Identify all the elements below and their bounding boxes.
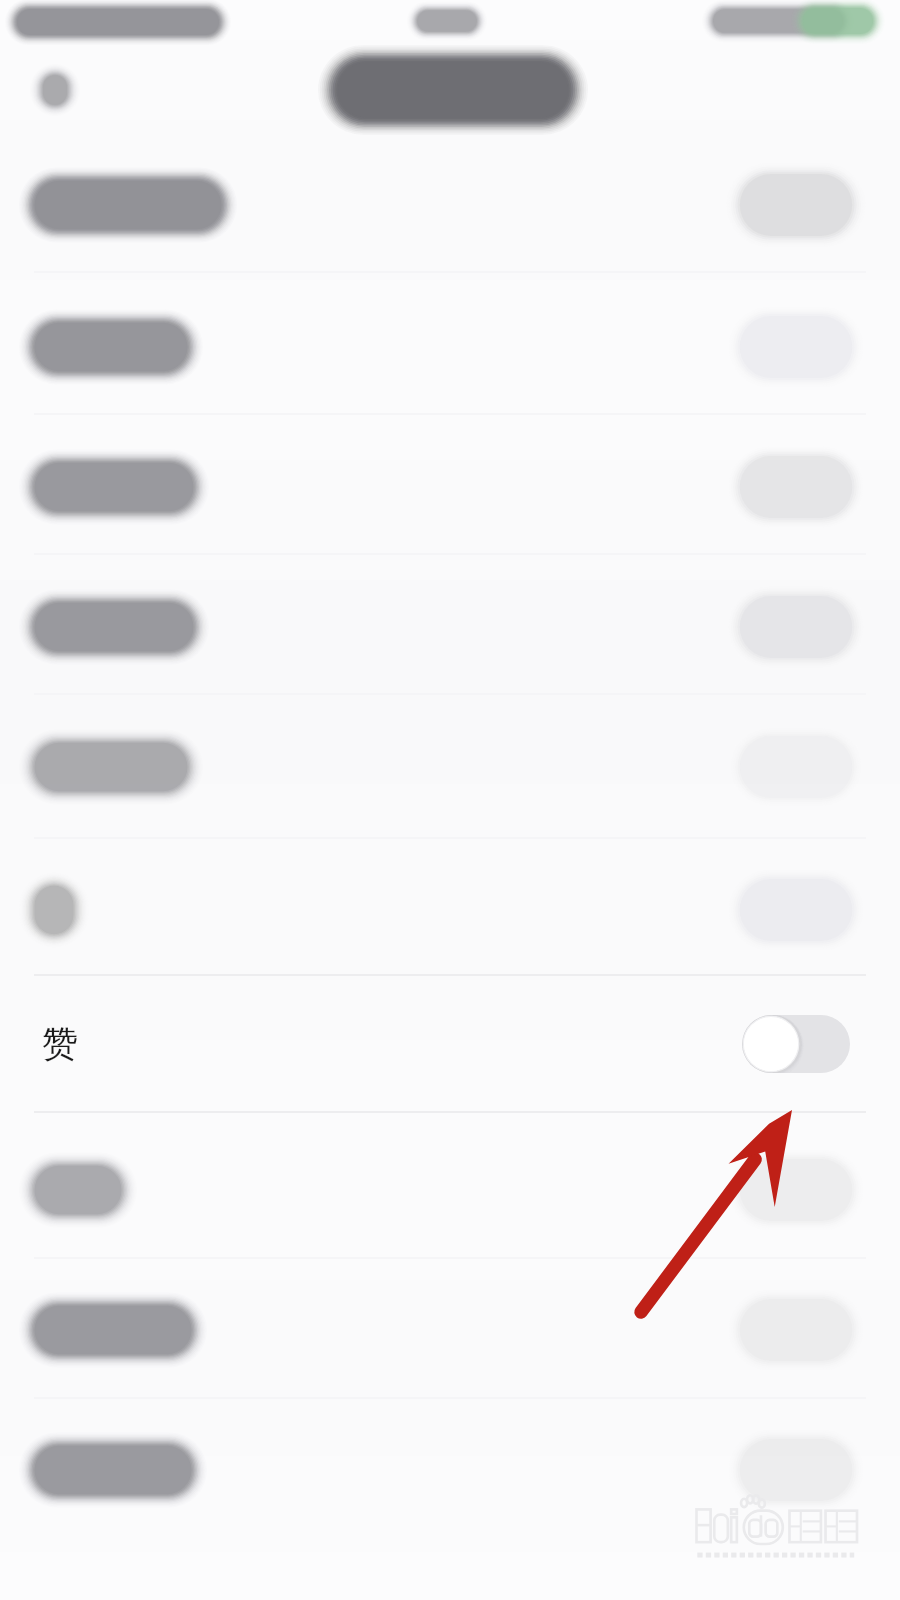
button[interactable]: 赞 [0,975,900,1600]
staticText: 赞 [42,1021,78,1066]
button[interactable]: 赞 toggle, off [742,1015,850,1073]
